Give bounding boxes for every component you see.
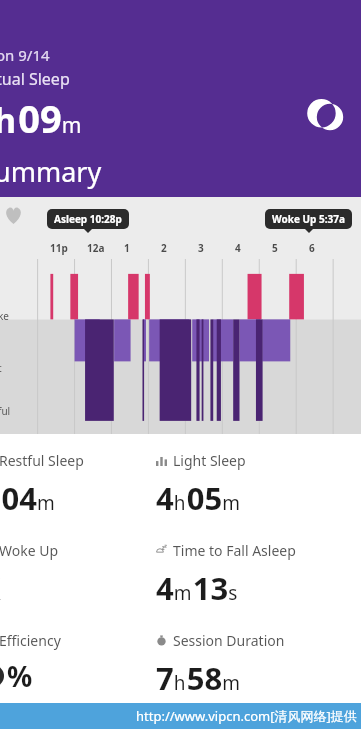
staticText: t [0, 361, 2, 375]
staticText: ummary [0, 153, 102, 190]
staticText: 4 [235, 241, 241, 255]
staticText: ful [0, 404, 11, 418]
staticText: on 9/14 [0, 45, 50, 65]
staticText: 5 [272, 241, 278, 255]
staticText: Time to Fall Asleep [173, 541, 296, 560]
staticText: 12a [87, 241, 105, 255]
button[interactable]: Light Sleep [156, 451, 359, 519]
staticText: Efficiency [0, 631, 61, 650]
staticText: 4m 13s [156, 567, 238, 609]
button[interactable]: Session Duration [156, 631, 359, 699]
staticText: 1 [124, 241, 130, 255]
staticText: http://www.vipcn.com[清风网络]提供 [136, 707, 357, 725]
staticText: Woke Up 5:37a [272, 212, 345, 226]
button[interactable]: Woke Up 5:37a [265, 209, 352, 229]
button[interactable]: Restful Sleep [0, 451, 140, 519]
staticText: 3 [198, 241, 204, 255]
button[interactable]: Efficiency [0, 631, 140, 695]
staticText: Session Duration [173, 631, 285, 650]
staticText: 2 [161, 241, 167, 255]
button[interactable]: Heart rate [4, 206, 23, 225]
button[interactable]: Time to Fall Asleep [156, 541, 359, 609]
staticText: 11p [50, 241, 68, 255]
button[interactable]: on 9/14 [0, 0, 361, 197]
staticText: % [7, 657, 33, 695]
staticText: Restful Sleep [0, 451, 84, 470]
button[interactable]: Sleep mode [315, 102, 345, 132]
staticText: h 04m [0, 477, 55, 519]
staticText: Woke Up [0, 541, 59, 560]
button[interactable]: Woke Up [0, 541, 140, 609]
staticText: X [0, 567, 1, 609]
staticText: 6 [309, 241, 315, 255]
staticText: h 09m [0, 92, 82, 144]
staticText: Light Sleep [173, 451, 246, 470]
staticText: ke [0, 309, 9, 323]
staticText: tual Sleep [0, 68, 70, 90]
staticText: 4h 05m [156, 477, 240, 519]
staticText: Asleep 10:28p [54, 212, 122, 226]
button[interactable]: Asleep 10:28p [47, 209, 129, 229]
staticText: 7h 58m [156, 657, 240, 699]
